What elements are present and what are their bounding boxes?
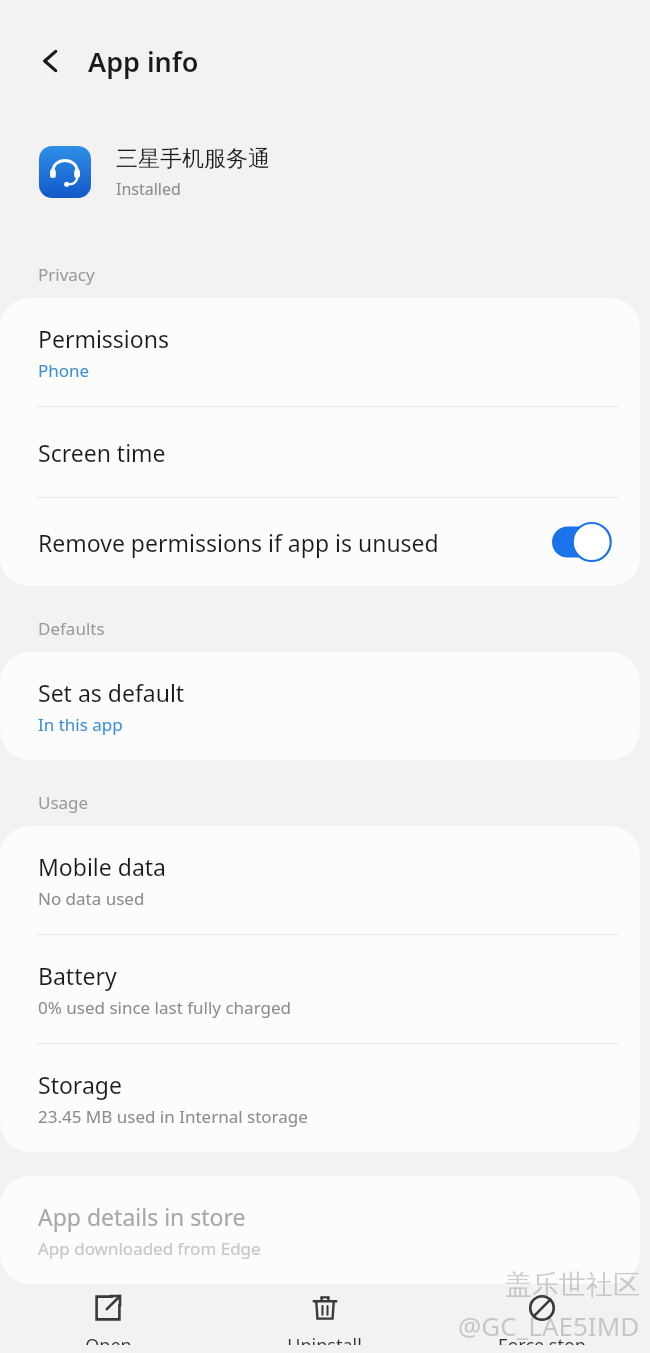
staticText: 23.45 MB used in Internal storage <box>38 1105 308 1128</box>
staticText: App details in store <box>38 1201 246 1232</box>
staticText: Mobile data <box>38 851 166 882</box>
staticText: Battery <box>38 960 117 991</box>
staticText: Installed <box>116 178 181 200</box>
staticText: Set as default <box>38 677 185 708</box>
button[interactable]: Force stop <box>433 1284 650 1353</box>
staticText: Defaults <box>38 617 105 640</box>
staticText: Usage <box>38 791 89 814</box>
staticText: @GC_LAE5IMD <box>458 1308 640 1343</box>
staticText: 盖乐世社区 <box>505 1268 640 1302</box>
staticText: Remove permissions if app is unused <box>38 527 540 558</box>
staticText: Uninstall <box>287 1333 362 1345</box>
button[interactable]: Mobile data <box>0 826 640 934</box>
button[interactable]: Permissions <box>0 298 640 406</box>
button[interactable]: Uninstall <box>216 1284 433 1353</box>
staticText: App info <box>88 43 199 80</box>
staticText: Privacy <box>38 263 95 286</box>
staticText: Screen time <box>38 437 166 468</box>
button[interactable]: Storage <box>0 1044 640 1152</box>
button[interactable]: Open <box>0 1284 216 1353</box>
staticText: Storage <box>38 1069 122 1100</box>
staticText: Open <box>85 1333 132 1345</box>
button[interactable]: Screen time <box>0 407 640 497</box>
staticText: No data used <box>38 887 145 910</box>
staticText: 三星手机服务通 <box>116 145 270 173</box>
staticText: App downloaded from Edge <box>38 1237 261 1260</box>
button[interactable]: 三星手机服务通 <box>0 122 650 222</box>
staticText: 0% used since last fully charged <box>38 996 291 1019</box>
button[interactable]: Remove permissions if app is unused <box>0 498 640 586</box>
button[interactable]: Set as default <box>0 652 640 760</box>
button[interactable]: Back <box>24 34 78 88</box>
staticText: In this app <box>38 713 123 736</box>
button[interactable]: Battery <box>0 935 640 1043</box>
staticText: Force stop <box>498 1333 586 1345</box>
staticText: Phone <box>38 359 90 382</box>
staticText: Permissions <box>38 323 169 354</box>
button[interactable]: App details in store <box>0 1176 640 1284</box>
